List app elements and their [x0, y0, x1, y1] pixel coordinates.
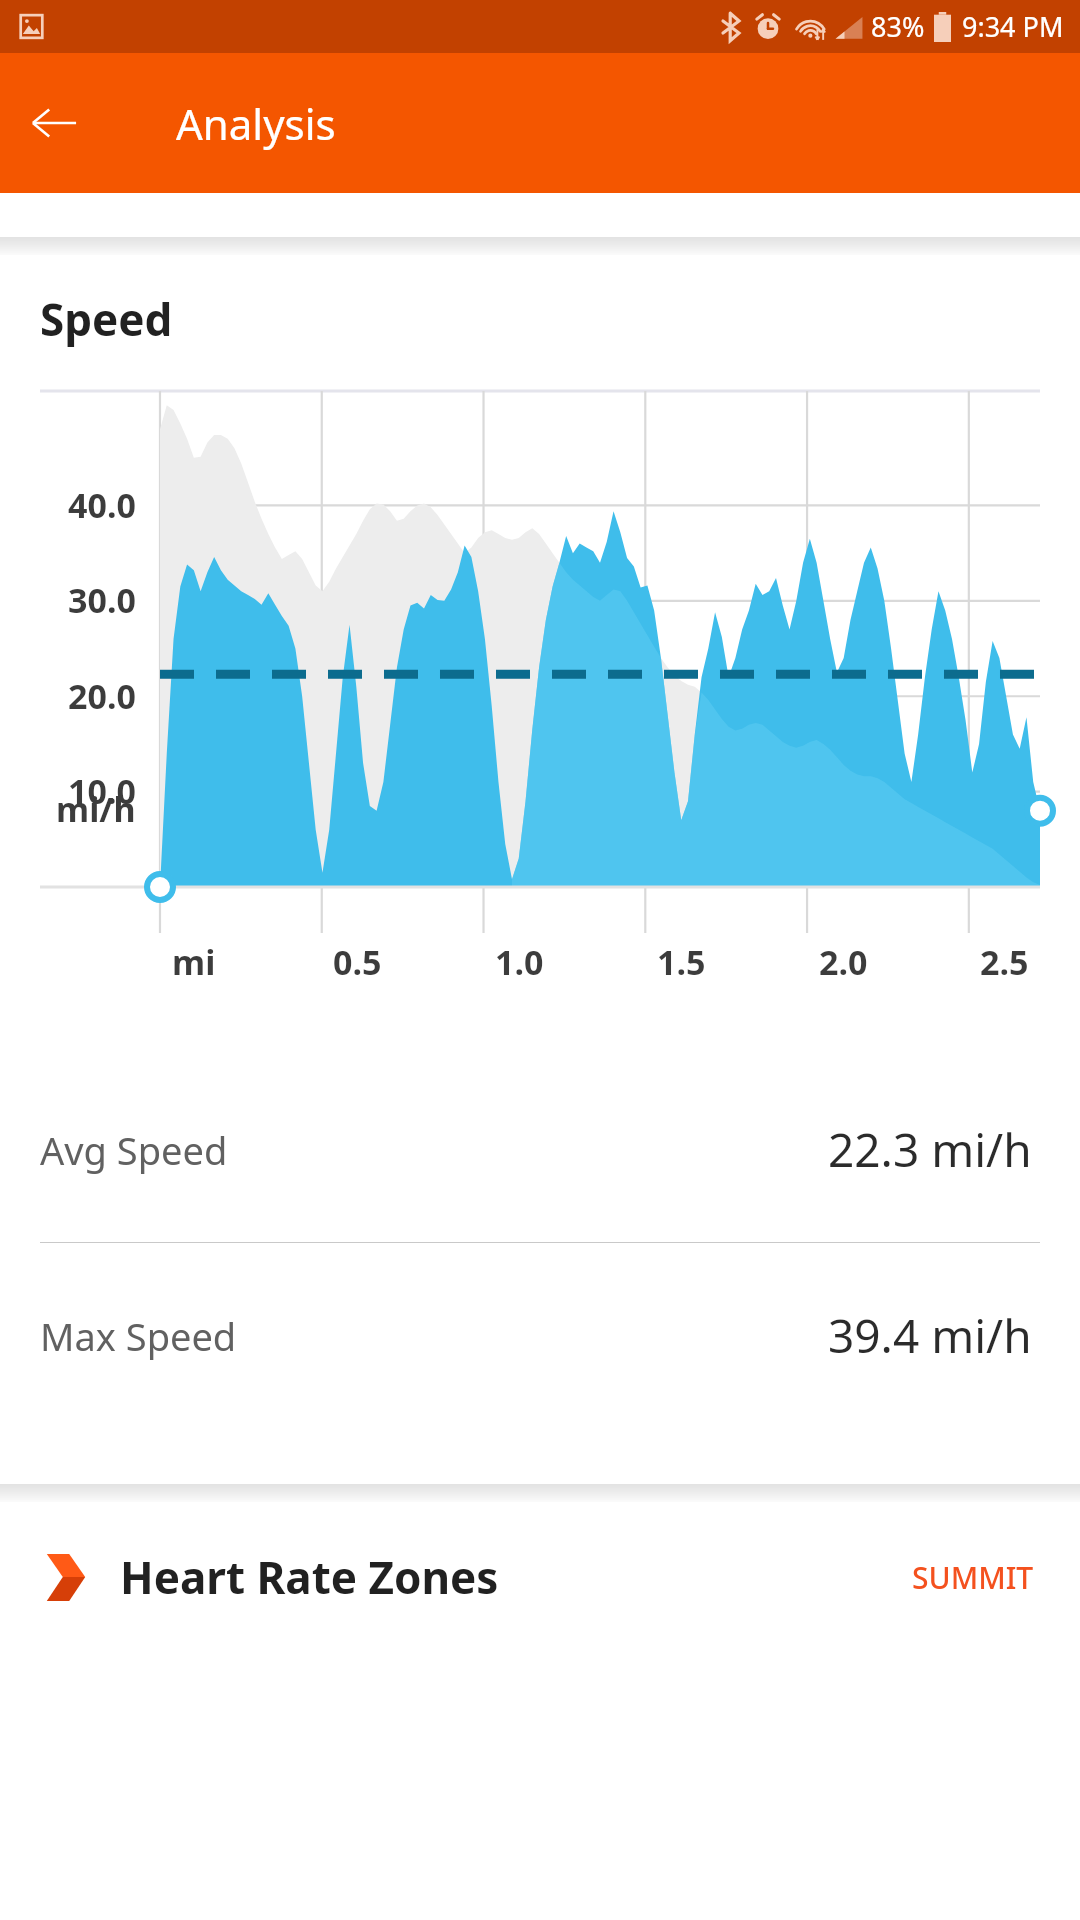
staticText: Max Speed	[40, 1310, 237, 1362]
staticText: 39.4 mi/h	[828, 1304, 1032, 1367]
staticText: Speed	[40, 289, 173, 349]
staticText: 2.5	[980, 939, 1029, 985]
staticText: 2.0	[819, 939, 868, 985]
button[interactable]: Heart Rate Zones	[0, 1502, 1080, 1652]
staticText: Analysis	[176, 95, 336, 152]
staticText: Heart Rate Zones	[120, 1547, 499, 1607]
staticText: 10.0	[68, 768, 136, 814]
staticText: 20.0	[68, 673, 136, 719]
staticText: 40.0	[68, 482, 136, 528]
staticText: 83%	[871, 8, 925, 45]
staticText: Avg Speed	[40, 1124, 228, 1176]
staticText: 0.5	[333, 939, 382, 985]
staticText: mi	[172, 939, 216, 985]
staticText: 1.5	[657, 939, 706, 985]
button[interactable]: Back	[22, 91, 86, 155]
staticText: mi/h	[56, 786, 136, 832]
button[interactable]: Avg Speed	[0, 1057, 1080, 1242]
staticText: 9:34 PM	[962, 8, 1064, 45]
button[interactable]: Max Speed	[0, 1243, 1080, 1428]
staticText: SUMMIT	[912, 1557, 1034, 1598]
staticText: 22.3 mi/h	[828, 1118, 1032, 1181]
staticText: 1.0	[495, 939, 544, 985]
staticText: 30.0	[68, 577, 136, 623]
